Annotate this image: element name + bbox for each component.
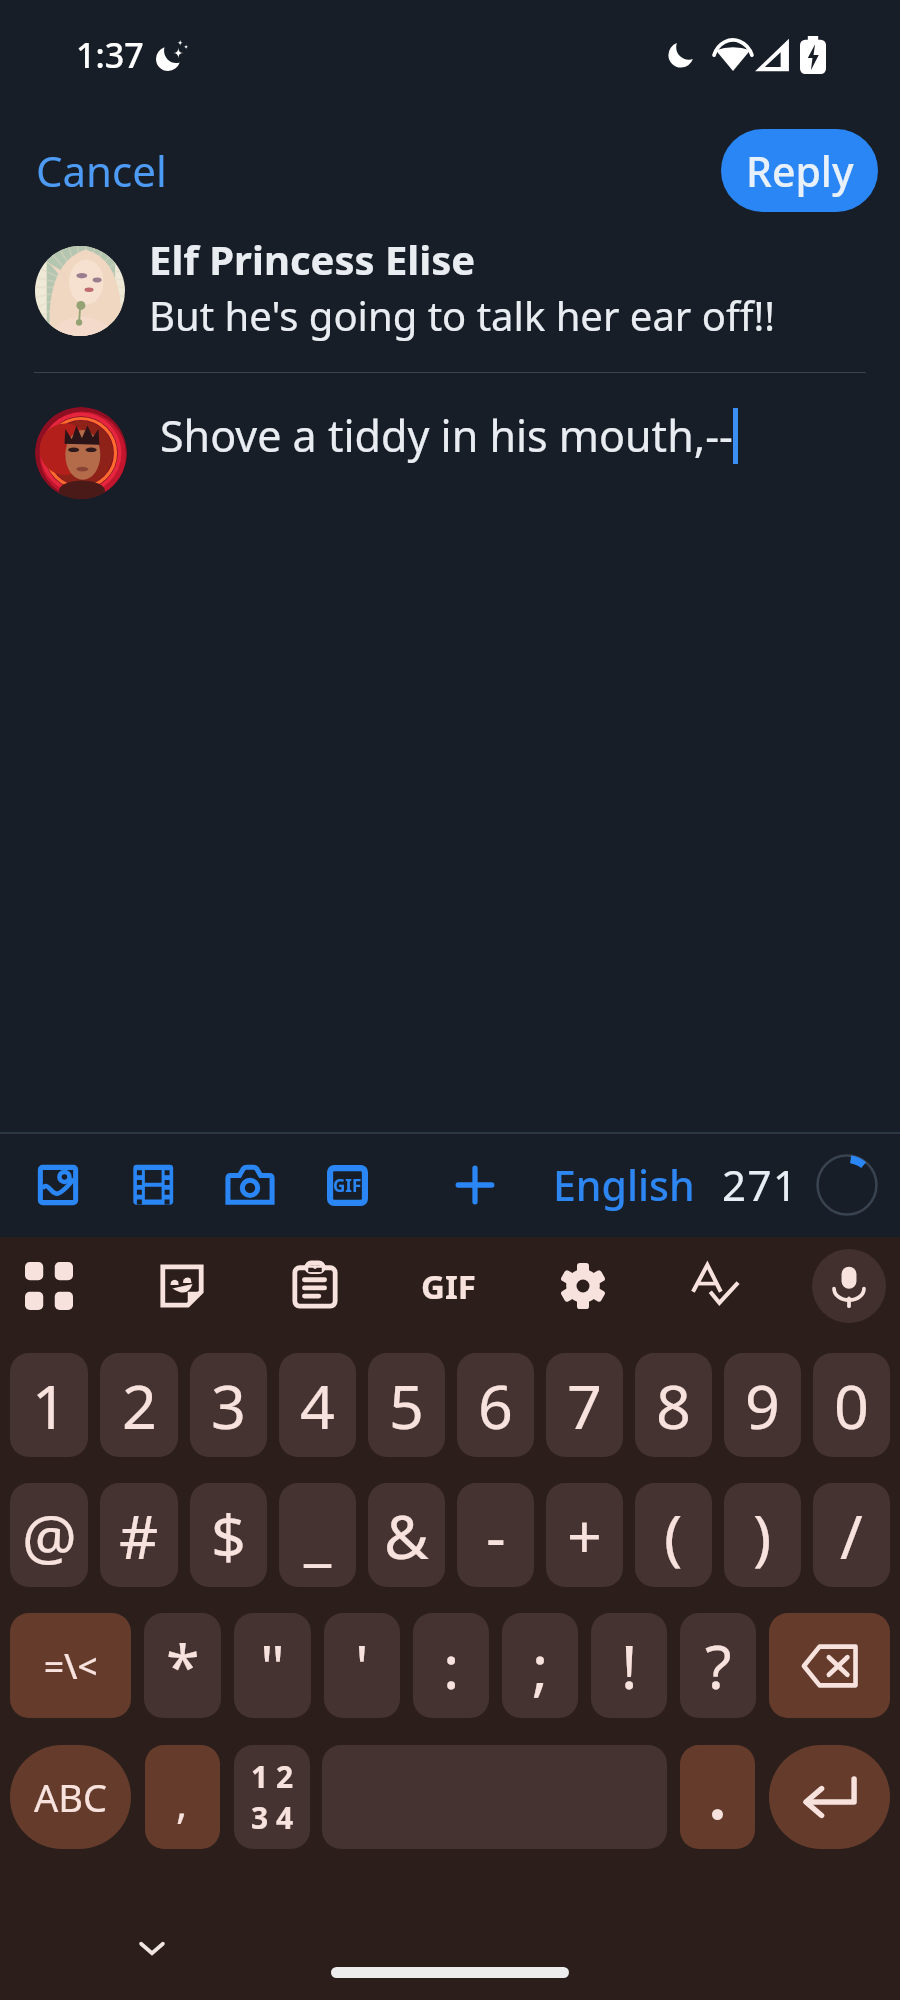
button[interactable]: " bbox=[234, 1613, 311, 1718]
button[interactable]: Voice input bbox=[812, 1249, 886, 1323]
staticText: Cancel bbox=[36, 142, 167, 199]
button[interactable]: : bbox=[413, 1613, 489, 1718]
button[interactable]: Send bbox=[815, 1153, 879, 1217]
staticText: - bbox=[486, 1494, 506, 1577]
button[interactable]: Text correction bbox=[679, 1249, 753, 1323]
button[interactable]: Reply bbox=[721, 129, 878, 212]
button[interactable]: Apps bbox=[12, 1249, 86, 1323]
staticText: " bbox=[260, 1624, 285, 1707]
button[interactable]: 8 bbox=[635, 1353, 712, 1457]
staticText: & bbox=[384, 1494, 429, 1577]
button[interactable]: Stickers bbox=[145, 1249, 219, 1323]
button[interactable]: 6 bbox=[457, 1353, 534, 1457]
button[interactable]: =\< bbox=[10, 1613, 131, 1718]
button[interactable]: # bbox=[100, 1483, 178, 1587]
button[interactable]: Add bbox=[443, 1153, 507, 1217]
button[interactable]: ' bbox=[324, 1613, 400, 1718]
button[interactable]: Clipboard bbox=[278, 1249, 352, 1323]
button[interactable]: 7 bbox=[546, 1353, 623, 1457]
staticText: Elf Princess Elise bbox=[149, 232, 476, 286]
button[interactable]: - bbox=[457, 1483, 534, 1587]
staticText: 1 2 bbox=[251, 1756, 294, 1797]
button[interactable]: GIF bbox=[411, 1249, 485, 1323]
staticText: 4 bbox=[300, 1364, 335, 1447]
staticText: ) bbox=[753, 1494, 772, 1577]
button[interactable]: ( bbox=[635, 1483, 712, 1587]
button[interactable]: Enter bbox=[769, 1745, 890, 1849]
button[interactable]: , bbox=[145, 1745, 220, 1849]
staticText: GIF bbox=[333, 1174, 362, 1197]
staticText: 8 bbox=[656, 1364, 691, 1447]
staticText: + bbox=[567, 1494, 602, 1577]
button[interactable]: ! bbox=[591, 1613, 667, 1718]
staticText: 3 bbox=[211, 1364, 246, 1447]
button[interactable]: ? bbox=[680, 1613, 756, 1718]
button[interactable]: _ bbox=[279, 1483, 356, 1587]
staticText: ( bbox=[664, 1494, 683, 1577]
staticText: ; bbox=[532, 1624, 549, 1707]
staticText: 6 bbox=[478, 1364, 513, 1447]
staticText: * bbox=[166, 1624, 200, 1707]
button[interactable]: & bbox=[368, 1483, 445, 1587]
staticText: ! bbox=[621, 1624, 638, 1707]
staticText: 271 bbox=[722, 1156, 799, 1213]
button[interactable]: 3 bbox=[190, 1353, 267, 1457]
button[interactable]: Backspace bbox=[769, 1613, 890, 1718]
button[interactable]: GIF bbox=[315, 1153, 379, 1217]
button[interactable]: Settings bbox=[546, 1249, 620, 1323]
staticText: ' bbox=[355, 1624, 369, 1707]
button[interactable]: Video bbox=[121, 1153, 185, 1217]
button[interactable]: Hide keyboard bbox=[127, 1923, 177, 1973]
button[interactable]: 4 bbox=[279, 1353, 356, 1457]
staticText: , bbox=[176, 1774, 188, 1831]
button[interactable]: ) bbox=[724, 1483, 801, 1587]
staticText: 2 bbox=[122, 1364, 157, 1447]
staticText: GIF bbox=[421, 1264, 476, 1309]
button[interactable]: @ bbox=[10, 1483, 88, 1587]
staticText: : bbox=[443, 1624, 460, 1707]
staticText: Shove a tiddy in his mouth,-- bbox=[160, 406, 733, 465]
staticText: $ bbox=[211, 1494, 246, 1577]
staticText: ? bbox=[705, 1624, 732, 1707]
button[interactable]: 0 bbox=[813, 1353, 890, 1457]
button[interactable]: * bbox=[144, 1613, 221, 1718]
button[interactable]: 1 bbox=[10, 1353, 88, 1457]
staticText: / bbox=[840, 1494, 863, 1577]
button[interactable] bbox=[680, 1745, 755, 1849]
button[interactable]: Gallery bbox=[26, 1153, 90, 1217]
staticText: 1:37 bbox=[76, 32, 144, 78]
staticText: 1 bbox=[32, 1364, 67, 1447]
staticText: Reply bbox=[746, 143, 854, 199]
button[interactable]: 5 bbox=[368, 1353, 445, 1457]
button[interactable]: $ bbox=[190, 1483, 267, 1587]
button[interactable]: 2 bbox=[100, 1353, 178, 1457]
staticText: ABC bbox=[34, 1771, 107, 1823]
staticText: 3 4 bbox=[251, 1797, 294, 1838]
button[interactable]: ; bbox=[502, 1613, 578, 1718]
button[interactable]: / bbox=[813, 1483, 890, 1587]
staticText: English bbox=[553, 1157, 695, 1213]
staticText: =\< bbox=[44, 1642, 98, 1690]
staticText: 7 bbox=[567, 1364, 602, 1447]
staticText: 0 bbox=[834, 1364, 869, 1447]
staticText: # bbox=[119, 1494, 159, 1577]
button[interactable]: ABC bbox=[10, 1745, 131, 1849]
button[interactable]: + bbox=[546, 1483, 623, 1587]
staticText: @ bbox=[22, 1494, 77, 1577]
button[interactable]: 9 bbox=[724, 1353, 801, 1457]
staticText: 9 bbox=[745, 1364, 780, 1447]
button[interactable]: Cancel bbox=[16, 130, 187, 211]
button[interactable]: Camera bbox=[218, 1153, 282, 1217]
staticText: But he's going to talk her ear off!! bbox=[149, 288, 775, 342]
button[interactable]: 1 2 bbox=[234, 1745, 310, 1849]
staticText: 5 bbox=[389, 1364, 424, 1447]
button[interactable]: English bbox=[545, 1151, 703, 1219]
staticText: _ bbox=[304, 1494, 332, 1577]
